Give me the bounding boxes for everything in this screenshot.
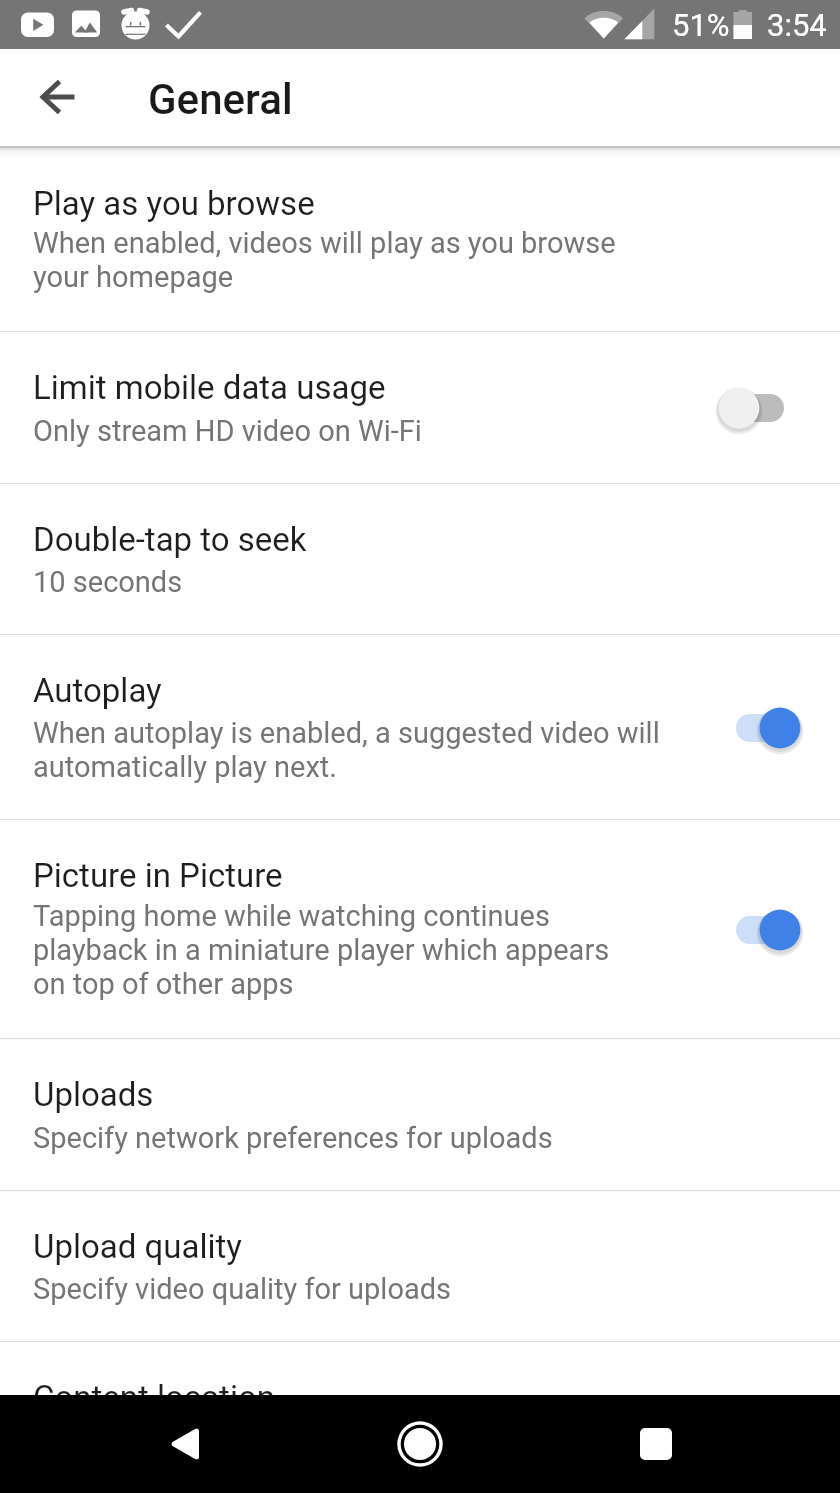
- button[interactable]: Recent apps: [604, 1395, 708, 1493]
- staticText: Specify network preferences for uploads: [33, 1121, 693, 1155]
- staticText: When autoplay is enabled, a suggested vi…: [33, 716, 693, 784]
- staticText: Limit mobile data usage: [33, 368, 693, 407]
- staticText: Double-tap to seek: [33, 520, 693, 559]
- staticText: Autoplay: [33, 671, 693, 710]
- button[interactable]: Double-tap to seek: [0, 484, 840, 635]
- button[interactable]: Back: [32, 71, 84, 123]
- button[interactable]: Picture in Picture: [0, 820, 840, 1039]
- staticText: 10 seconds: [33, 565, 693, 599]
- staticText: 3:54: [767, 7, 827, 43]
- staticText: Uploads: [33, 1075, 693, 1114]
- button[interactable]: Back: [132, 1395, 236, 1493]
- button[interactable]: Upload quality: [0, 1191, 840, 1342]
- button[interactable]: Play as you browse: [0, 148, 840, 332]
- staticText: General: [148, 75, 293, 124]
- staticText: When enabled, videos will play as you br…: [33, 226, 633, 294]
- staticText: Specify video quality for uploads: [33, 1272, 693, 1306]
- staticText: Play as you browse: [33, 184, 633, 223]
- staticText: Picture in Picture: [33, 856, 641, 895]
- staticText: Only stream HD video on Wi-Fi: [33, 414, 693, 448]
- staticText: Upload quality: [33, 1227, 693, 1266]
- staticText: Tapping home while watching continues pl…: [33, 899, 641, 1001]
- button[interactable]: Home: [368, 1395, 472, 1493]
- staticText: Content location: [33, 1378, 693, 1417]
- staticText: 51%: [672, 7, 730, 43]
- button[interactable]: Uploads: [0, 1039, 840, 1191]
- button[interactable]: Content location: [0, 1342, 840, 1493]
- button[interactable]: Limit mobile data usage: [0, 332, 840, 484]
- button[interactable]: Autoplay: [0, 635, 840, 820]
